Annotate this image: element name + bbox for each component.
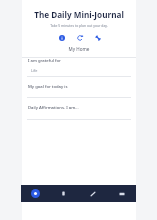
- staticText: The Daily Mini-Journal: [22, 9, 136, 20]
- button[interactable]: Information: [57, 33, 66, 42]
- staticText: Take 5 minutes to plan out your day.: [22, 23, 136, 28]
- button[interactable]: Call: [93, 33, 102, 42]
- staticText: My Home: [22, 46, 136, 52]
- button[interactable]: Cards: [107, 185, 136, 202]
- button[interactable]: Edit: [78, 185, 107, 202]
- staticText: Daily Affirmations. I am...: [28, 105, 79, 111]
- button[interactable]: Refresh: [75, 33, 84, 42]
- staticText: I am grateful for: [28, 58, 61, 64]
- staticText: My goal for today is: [28, 84, 68, 90]
- button[interactable]: Home: [21, 185, 49, 202]
- staticText: Life: [31, 68, 38, 73]
- button[interactable]: Journal: [49, 185, 78, 202]
